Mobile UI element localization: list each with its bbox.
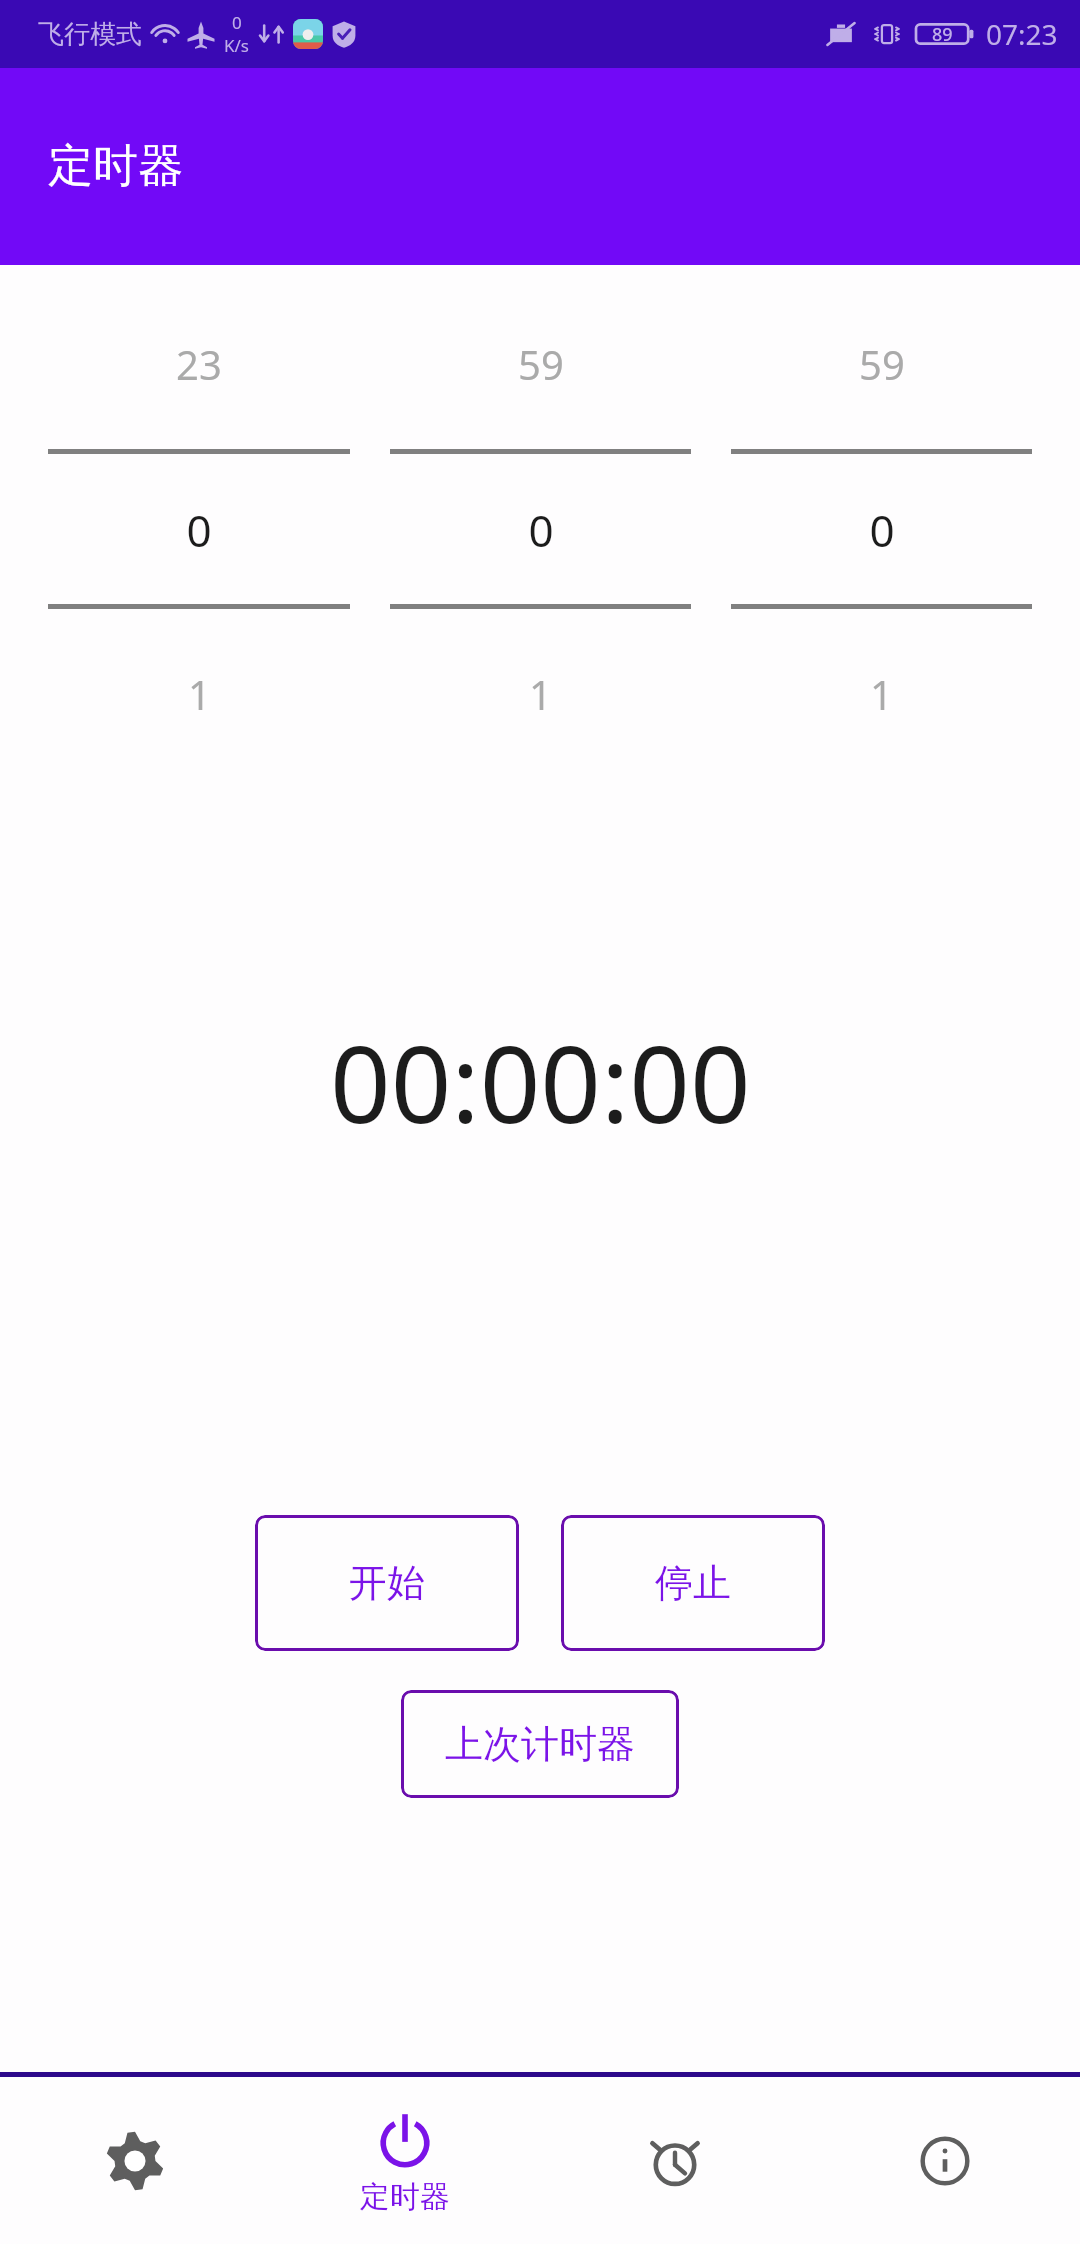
button[interactable]: 59 xyxy=(731,337,1032,721)
staticText: 23 xyxy=(176,337,222,391)
button[interactable]: About xyxy=(810,2077,1080,2244)
staticText: 59 xyxy=(859,337,905,391)
staticText: 停止 xyxy=(655,1559,731,1607)
button[interactable]: 59 xyxy=(390,337,691,721)
staticText: 定时器 xyxy=(48,138,183,195)
staticText: 0 xyxy=(869,500,895,560)
staticText: 1 xyxy=(188,667,211,721)
button[interactable]: Alarm xyxy=(540,2077,810,2244)
button[interactable]: Settings xyxy=(0,2077,270,2244)
button[interactable]: 开始 xyxy=(255,1515,519,1651)
staticText: 1 xyxy=(529,667,552,721)
button[interactable]: Timer xyxy=(270,2077,540,2244)
button[interactable]: 上次计时器 xyxy=(401,1690,679,1798)
staticText: 07:23 xyxy=(986,15,1058,53)
staticText: 开始 xyxy=(349,1559,425,1607)
staticText: 89 xyxy=(932,22,953,47)
staticText: 0 xyxy=(232,11,242,34)
staticText: 0 xyxy=(186,500,212,560)
staticText: K/s xyxy=(224,34,249,57)
button[interactable]: 23 xyxy=(48,337,350,721)
staticText: 上次计时器 xyxy=(445,1720,635,1768)
staticText: 定时器 xyxy=(360,2178,450,2216)
staticText: 00:00:00 xyxy=(330,1010,751,1154)
staticText: 0 xyxy=(528,500,554,560)
staticText: 1 xyxy=(870,667,893,721)
button[interactable]: 停止 xyxy=(561,1515,825,1651)
staticText: 59 xyxy=(518,337,564,391)
staticText: 飞行模式 xyxy=(38,18,142,51)
